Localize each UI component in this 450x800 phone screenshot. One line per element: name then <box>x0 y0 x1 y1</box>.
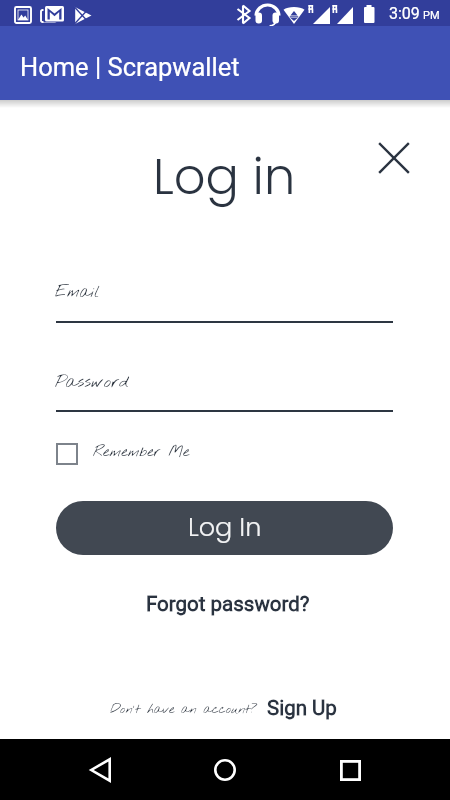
staticText: Remember Me <box>93 442 190 462</box>
staticText: Don't have an account? <box>110 701 258 718</box>
staticText: 3:09 <box>389 4 420 23</box>
button[interactable]: Home <box>201 746 249 794</box>
staticText: Home | Scrapwallet <box>20 52 240 82</box>
staticText: Log in <box>153 142 296 211</box>
button[interactable]: Forgot password? <box>138 587 318 621</box>
staticText: Password <box>55 371 129 394</box>
staticText: Email <box>55 282 100 303</box>
button[interactable]: Remember Me <box>56 443 190 465</box>
button[interactable]: Recents <box>326 746 374 794</box>
button[interactable]: Log In <box>56 501 393 555</box>
button[interactable]: Sign Up <box>267 696 337 720</box>
staticText: PM <box>423 9 440 22</box>
button[interactable]: Close <box>371 135 417 181</box>
button[interactable]: Back <box>76 746 124 794</box>
staticText: Log In <box>188 509 262 545</box>
